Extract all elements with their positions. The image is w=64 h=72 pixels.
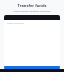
staticText: FROM ACCOUNT: [7, 22, 24, 25]
staticText: Transfer funds: [0, 3, 64, 8]
button[interactable]: [4, 66, 60, 69]
staticText: Move money between accounts: [0, 9, 64, 12]
